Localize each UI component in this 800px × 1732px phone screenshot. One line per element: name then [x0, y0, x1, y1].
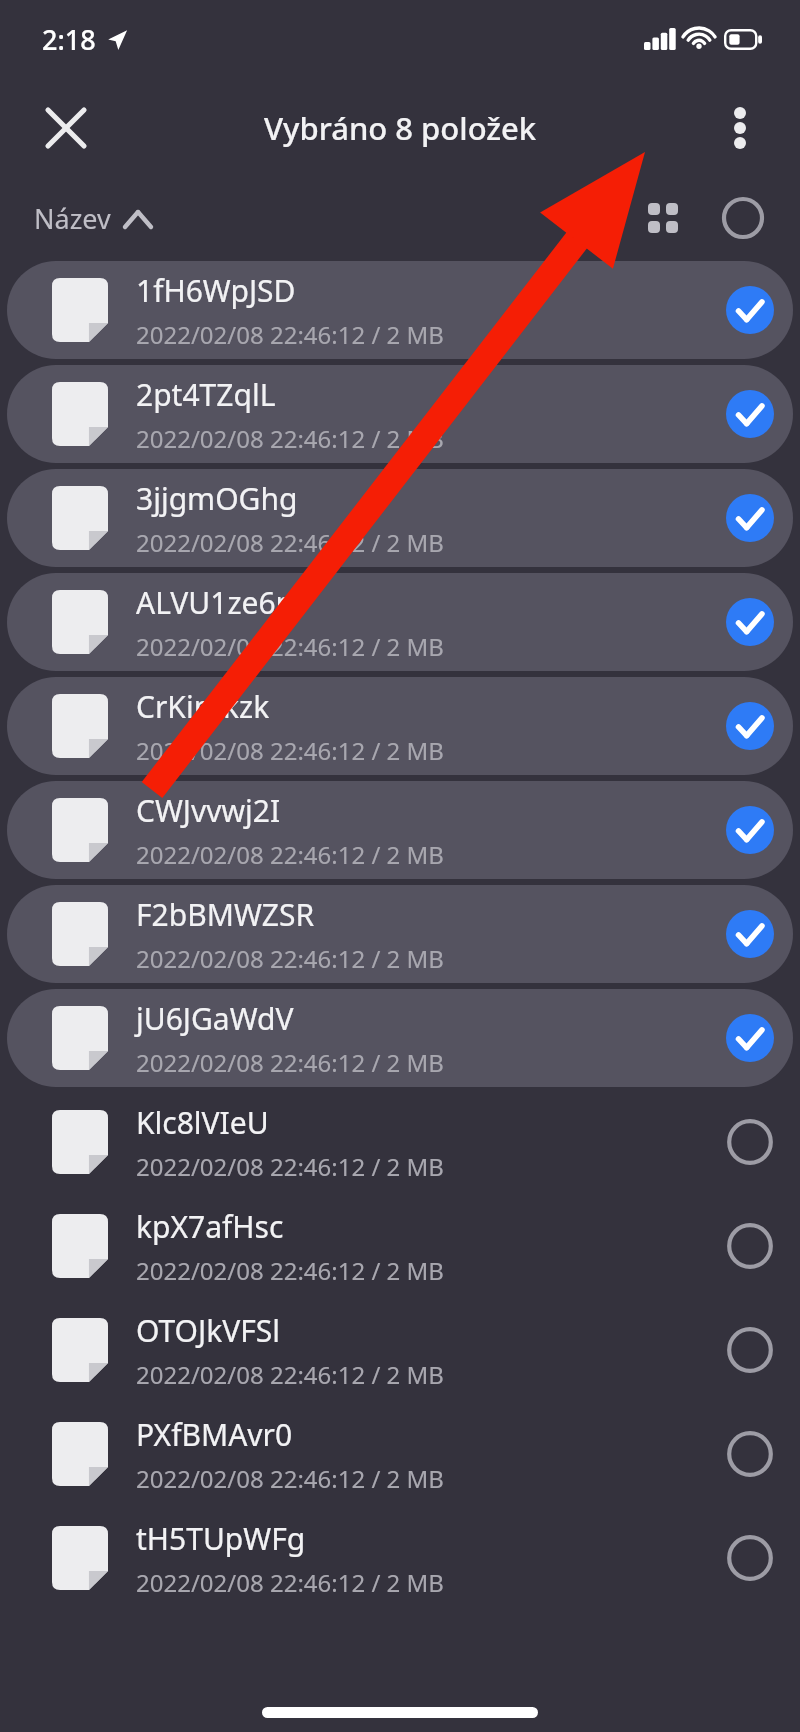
staticText: OTOJkVFSl — [136, 1310, 281, 1351]
staticText: 2022/02/08 22:46:12 / 2 MB — [136, 422, 444, 455]
button[interactable]: Selected — [713, 585, 787, 659]
button[interactable]: PXfBMAvr0 — [7, 1405, 793, 1503]
staticText: jU6JGaWdV — [136, 998, 294, 1039]
button[interactable]: jU6JGaWdV — [7, 989, 793, 1087]
button[interactable]: Název — [22, 192, 163, 245]
button[interactable]: Selected — [713, 793, 787, 867]
staticText: CrKintkzk — [136, 686, 270, 727]
staticText: CWJvvwj2I — [136, 790, 281, 831]
button[interactable]: Selected — [713, 377, 787, 451]
button[interactable]: More options — [702, 90, 778, 166]
staticText: PXfBMAvr0 — [136, 1414, 293, 1455]
button[interactable]: Select all — [708, 183, 778, 253]
button[interactable]: Not selected — [713, 1417, 787, 1491]
staticText: 3jjgmOGhg — [136, 478, 298, 519]
button[interactable]: Selected — [713, 481, 787, 555]
button[interactable]: Not selected — [713, 1521, 787, 1595]
button[interactable]: Selected — [713, 897, 787, 971]
staticText: 2022/02/08 22:46:12 / 2 MB — [136, 1150, 444, 1183]
button[interactable]: tH5TUpWFg — [7, 1509, 793, 1607]
staticText: 2022/02/08 22:46:12 / 2 MB — [136, 1046, 444, 1079]
button[interactable]: Grid view — [628, 183, 698, 253]
staticText: Název — [34, 200, 111, 237]
button[interactable]: OTOJkVFSl — [7, 1301, 793, 1399]
staticText: ALVU1ze6p — [136, 582, 295, 623]
button[interactable]: Not selected — [713, 1313, 787, 1387]
button[interactable]: 2pt4TZqlL — [7, 365, 793, 463]
staticText: tH5TUpWFg — [136, 1518, 306, 1559]
button[interactable]: Not selected — [713, 1209, 787, 1283]
staticText: kpX7afHsc — [136, 1206, 284, 1247]
staticText: 2:18 — [42, 21, 96, 58]
staticText: 2022/02/08 22:46:12 / 2 MB — [136, 734, 444, 767]
staticText: 2022/02/08 22:46:12 / 2 MB — [136, 838, 444, 871]
staticText: F2bBMWZSR — [136, 894, 315, 935]
staticText: 2022/02/08 22:46:12 / 2 MB — [136, 1254, 444, 1287]
button[interactable]: Close selection — [28, 90, 104, 166]
staticText: 2022/02/08 22:46:12 / 2 MB — [136, 630, 444, 663]
staticText: 2022/02/08 22:46:12 / 2 MB — [136, 1462, 444, 1495]
button[interactable]: CrKintkzk — [7, 677, 793, 775]
button[interactable]: Selected — [713, 689, 787, 763]
button[interactable]: Klc8lVIeU — [7, 1093, 793, 1191]
button[interactable]: 3jjgmOGhg — [7, 469, 793, 567]
staticText: 2022/02/08 22:46:12 / 2 MB — [136, 526, 444, 559]
button[interactable]: Selected — [713, 1001, 787, 1075]
staticText: Klc8lVIeU — [136, 1102, 269, 1143]
button[interactable]: ALVU1ze6p — [7, 573, 793, 671]
staticText: 2022/02/08 22:46:12 / 2 MB — [136, 1358, 444, 1391]
staticText: 2022/02/08 22:46:12 / 2 MB — [136, 942, 444, 975]
staticText: Vybráno 8 položek — [264, 107, 537, 149]
button[interactable]: Not selected — [713, 1105, 787, 1179]
button[interactable]: Selected — [713, 273, 787, 347]
button[interactable]: 1fH6WpJSD — [7, 261, 793, 359]
button[interactable]: CWJvvwj2I — [7, 781, 793, 879]
staticText: 2pt4TZqlL — [136, 374, 276, 415]
button[interactable]: F2bBMWZSR — [7, 885, 793, 983]
staticText: 1fH6WpJSD — [136, 270, 296, 311]
staticText: 2022/02/08 22:46:12 / 2 MB — [136, 1566, 444, 1599]
staticText: 2022/02/08 22:46:12 / 2 MB — [136, 318, 444, 351]
button[interactable]: kpX7afHsc — [7, 1197, 793, 1295]
